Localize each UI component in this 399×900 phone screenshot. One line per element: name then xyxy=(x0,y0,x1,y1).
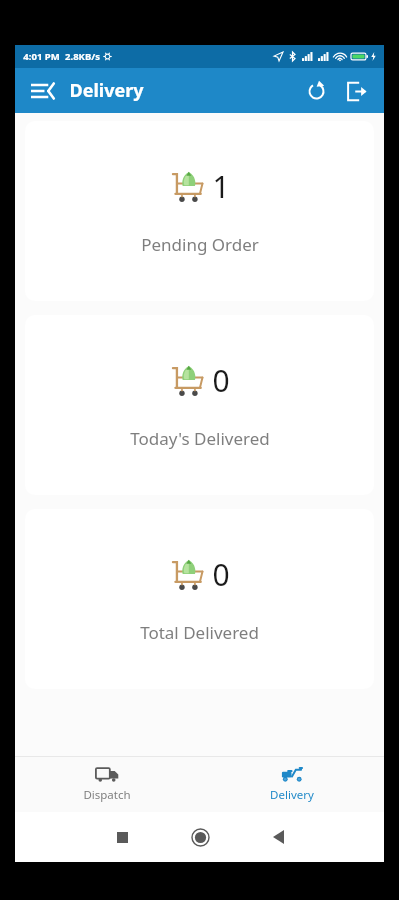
button[interactable]: 1 xyxy=(25,121,374,301)
staticText: 0 xyxy=(212,360,230,401)
staticText: 1 xyxy=(212,166,230,207)
button[interactable]: Refresh xyxy=(296,71,336,111)
button[interactable]: 0 xyxy=(25,315,374,495)
staticText: Dispatch xyxy=(83,787,131,803)
button[interactable]: Logout xyxy=(336,71,376,111)
staticText: 4:01 PM xyxy=(23,50,60,63)
staticText: 0 xyxy=(212,554,230,595)
button[interactable]: 0 xyxy=(25,509,374,689)
button[interactable]: Recent apps xyxy=(98,813,146,861)
button[interactable]: Back xyxy=(254,813,302,861)
staticText: Delivery xyxy=(69,78,144,103)
button[interactable]: Open navigation menu xyxy=(25,73,61,109)
staticText: Today's Delivered xyxy=(130,427,270,450)
staticText: 2.8KB/s xyxy=(65,50,100,63)
button[interactable]: Home xyxy=(176,813,224,861)
staticText: Pending Order xyxy=(141,233,259,256)
staticText: Total Delivered xyxy=(140,621,259,644)
button[interactable]: Delivery xyxy=(199,757,384,812)
staticText: Delivery xyxy=(270,787,314,803)
button[interactable]: Dispatch xyxy=(15,757,199,812)
